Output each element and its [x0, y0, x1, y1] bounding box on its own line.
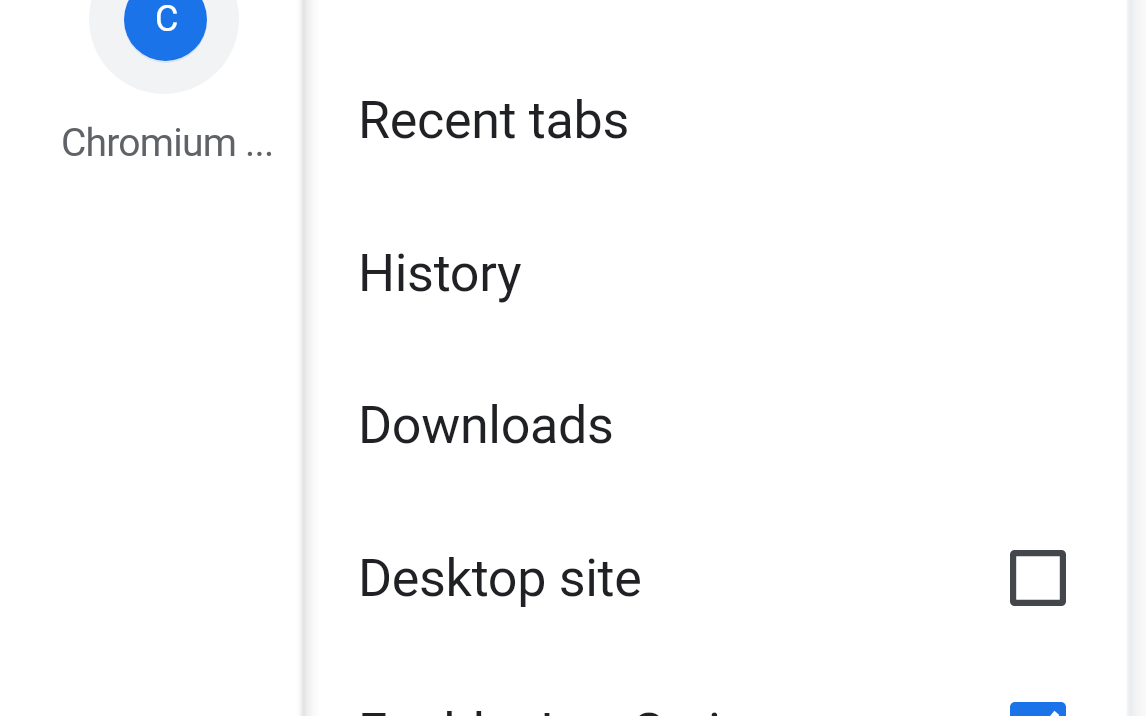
staticText: History — [358, 243, 522, 304]
staticText: Chromium ... — [61, 120, 274, 166]
button[interactable]: Desktop site — [305, 502, 1128, 654]
staticText: Enable JavaScript — [358, 702, 766, 716]
other: Unchecked — [1010, 550, 1066, 606]
button[interactable]: History — [305, 197, 1128, 349]
staticText: Desktop site — [358, 548, 642, 609]
staticText: C — [155, 0, 179, 40]
button[interactable]: Downloads — [305, 349, 1128, 501]
button[interactable]: Recent tabs — [305, 44, 1128, 196]
staticText: Downloads — [358, 395, 614, 456]
staticText: Recent tabs — [358, 90, 629, 151]
button[interactable]: Enable JavaScript — [305, 656, 1128, 716]
button[interactable]: Chromium profile — [89, 0, 239, 94]
other: Checked — [1010, 702, 1066, 716]
